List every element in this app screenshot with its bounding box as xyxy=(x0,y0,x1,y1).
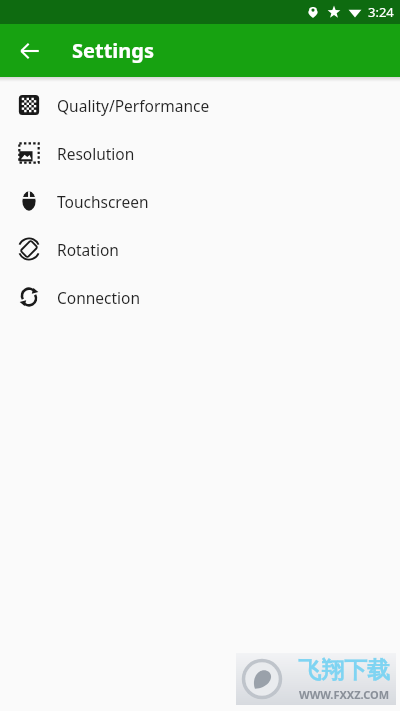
staticText: 飞翔下载 xyxy=(298,656,390,685)
button[interactable]: Quality/Performance xyxy=(0,81,400,129)
staticText: Touchscreen xyxy=(57,191,149,212)
staticText: Connection xyxy=(57,287,141,308)
button[interactable]: Back xyxy=(8,29,52,73)
staticText: Rotation xyxy=(57,239,119,260)
staticText: 3:24 xyxy=(368,3,394,21)
staticText: Settings xyxy=(72,37,154,64)
button[interactable]: Resolution xyxy=(0,129,400,177)
button[interactable]: Touchscreen xyxy=(0,177,400,225)
button[interactable]: Rotation xyxy=(0,225,400,273)
button[interactable]: Connection xyxy=(0,273,400,321)
staticText: WWW.FXXZ.COM xyxy=(299,687,390,702)
staticText: Quality/Performance xyxy=(57,95,210,116)
staticText: Resolution xyxy=(57,143,135,164)
